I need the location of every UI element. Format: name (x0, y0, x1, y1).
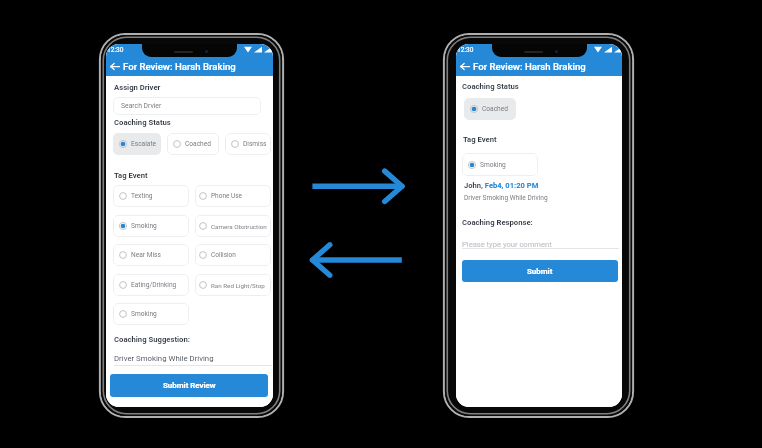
button[interactable]: Dismiss (225, 133, 271, 155)
staticText: Search Drvier (121, 102, 162, 110)
staticText: Driver Smoking While Driving (464, 194, 548, 202)
staticText: Coaching Response: (462, 218, 533, 227)
button[interactable]: Search Drvier (113, 97, 261, 115)
button[interactable]: Smoking (113, 303, 189, 325)
staticText: Phone Use (211, 192, 243, 200)
button[interactable]: Camera Obstruction (195, 215, 271, 237)
staticText: Smoking (480, 161, 506, 169)
staticText: Coached (482, 105, 508, 113)
staticText: Camera Obstruction (211, 223, 267, 230)
staticText: For Review: Harsh Braking (123, 61, 236, 72)
staticText: Submit Review (163, 381, 216, 390)
staticText: Tag Event (114, 171, 148, 180)
button[interactable]: Smoking (113, 215, 189, 237)
button[interactable]: Submit Review (110, 374, 268, 397)
button[interactable]: Coached (464, 98, 516, 120)
staticText: Dismiss (243, 140, 267, 148)
button[interactable]: Please type your comment (462, 239, 619, 250)
staticText: Smoking (131, 222, 157, 230)
button[interactable]: Smoking (462, 153, 538, 176)
staticText: Texting (131, 192, 153, 200)
staticText: Ran Red Light/Stop (211, 282, 265, 289)
staticText: Near Miss (131, 251, 161, 259)
button[interactable]: Collision (195, 244, 271, 266)
button[interactable]: Submit (462, 260, 618, 282)
staticText: 12:30 (107, 46, 124, 54)
staticText: Smoking (131, 310, 157, 318)
staticText: Driver Smoking While Driving (114, 354, 214, 363)
staticText: Assign Driver (114, 83, 161, 92)
staticText: Escalate (131, 140, 157, 148)
button[interactable]: Ran Red Light/Stop (195, 274, 271, 296)
button[interactable]: Coached (167, 133, 219, 155)
staticText: Collision (211, 251, 236, 259)
staticText: Coaching Status (462, 82, 519, 91)
staticText: Submit (527, 267, 553, 276)
button[interactable]: Phone Use (195, 185, 271, 207)
button[interactable]: Near Miss (113, 244, 189, 266)
staticText: For Review: Harsh Braking (473, 61, 586, 72)
button[interactable]: Escalate (113, 133, 161, 155)
staticText: Please type your comment (462, 240, 552, 249)
button[interactable]: Texting (113, 185, 189, 207)
staticText: 12:30 (457, 46, 474, 54)
staticText: John, Feb4, 01:20 PM (464, 181, 539, 190)
staticText: Eating/Drinking (131, 281, 177, 289)
staticText: Coaching Status (114, 118, 171, 127)
button[interactable]: Eating/Drinking (113, 274, 189, 296)
button[interactable]: Back (106, 56, 123, 76)
button[interactable]: Back (456, 56, 473, 76)
staticText: Coached (185, 140, 211, 148)
staticText: Tag Event (463, 135, 497, 144)
staticText: Coaching Suggestion: (114, 335, 190, 344)
